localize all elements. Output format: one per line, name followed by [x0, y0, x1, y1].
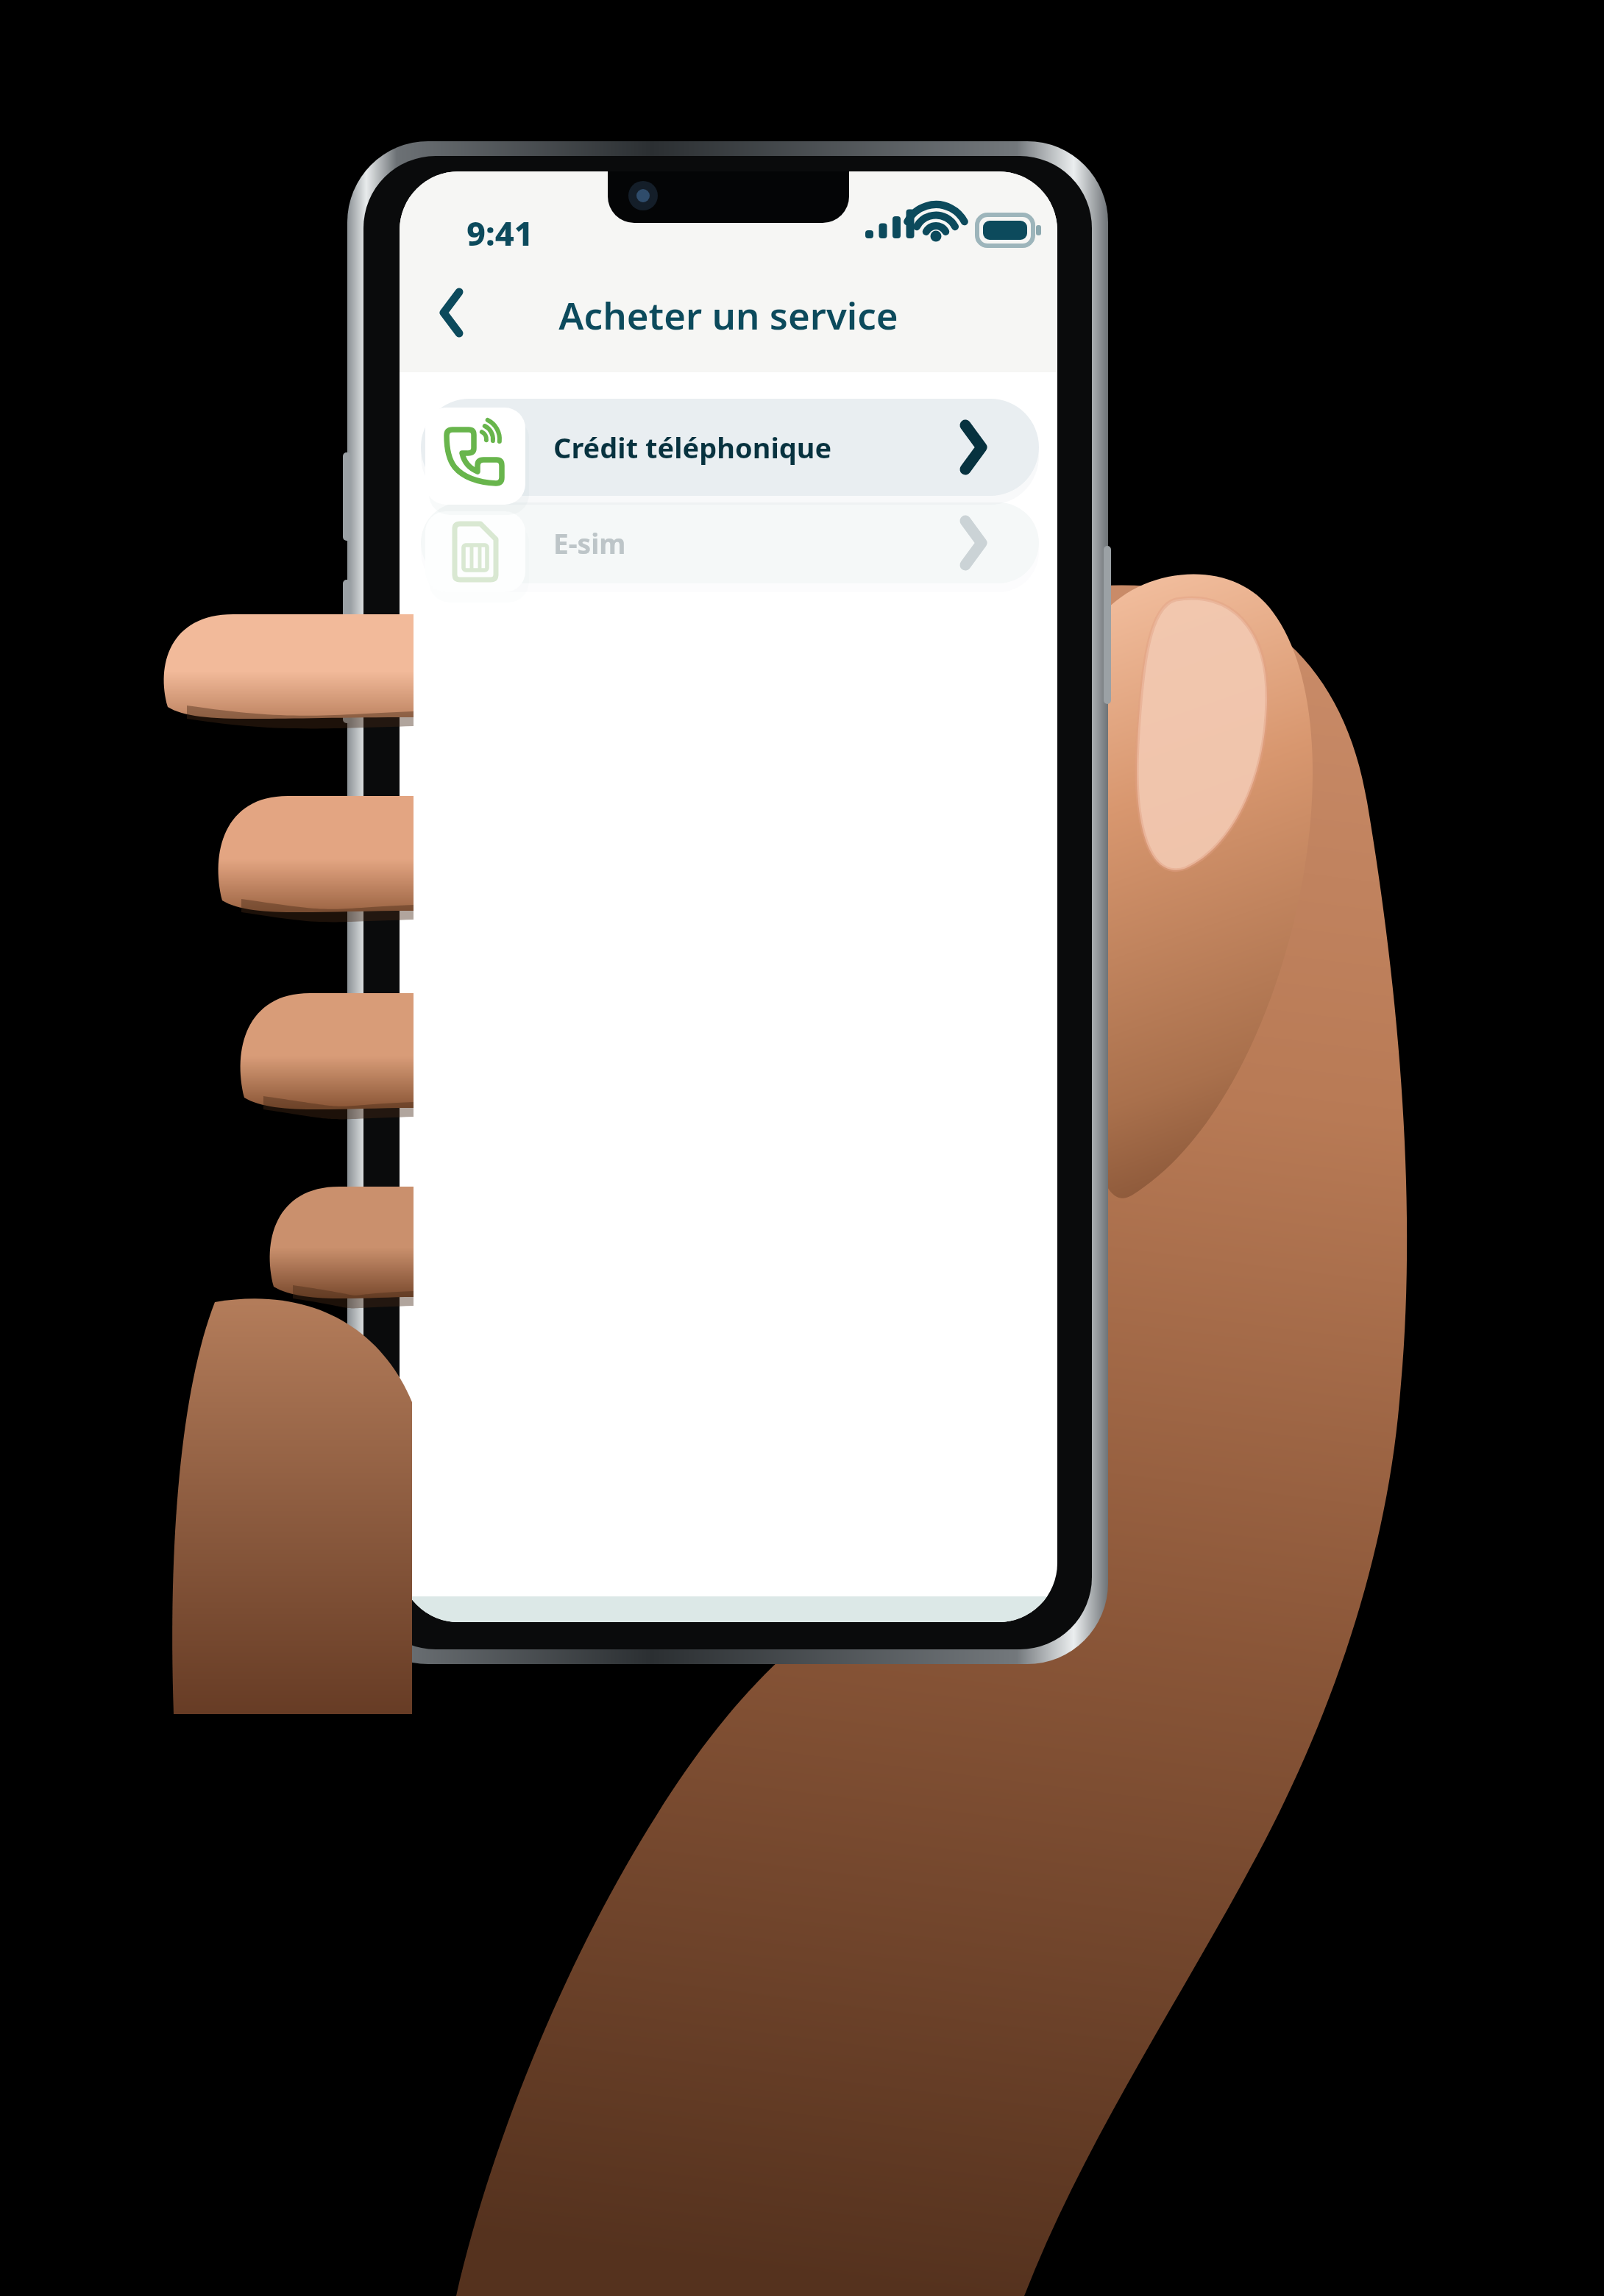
staticText: Crédit téléphonique	[553, 428, 832, 466]
button[interactable]: Retour	[409, 277, 483, 350]
staticText: E-sim	[553, 525, 626, 561]
button[interactable]: E-sim	[421, 502, 1039, 583]
staticText: 9:41	[466, 210, 533, 255]
staticText: Acheter un service	[558, 289, 898, 340]
button[interactable]: Crédit téléphonique	[421, 399, 1039, 496]
